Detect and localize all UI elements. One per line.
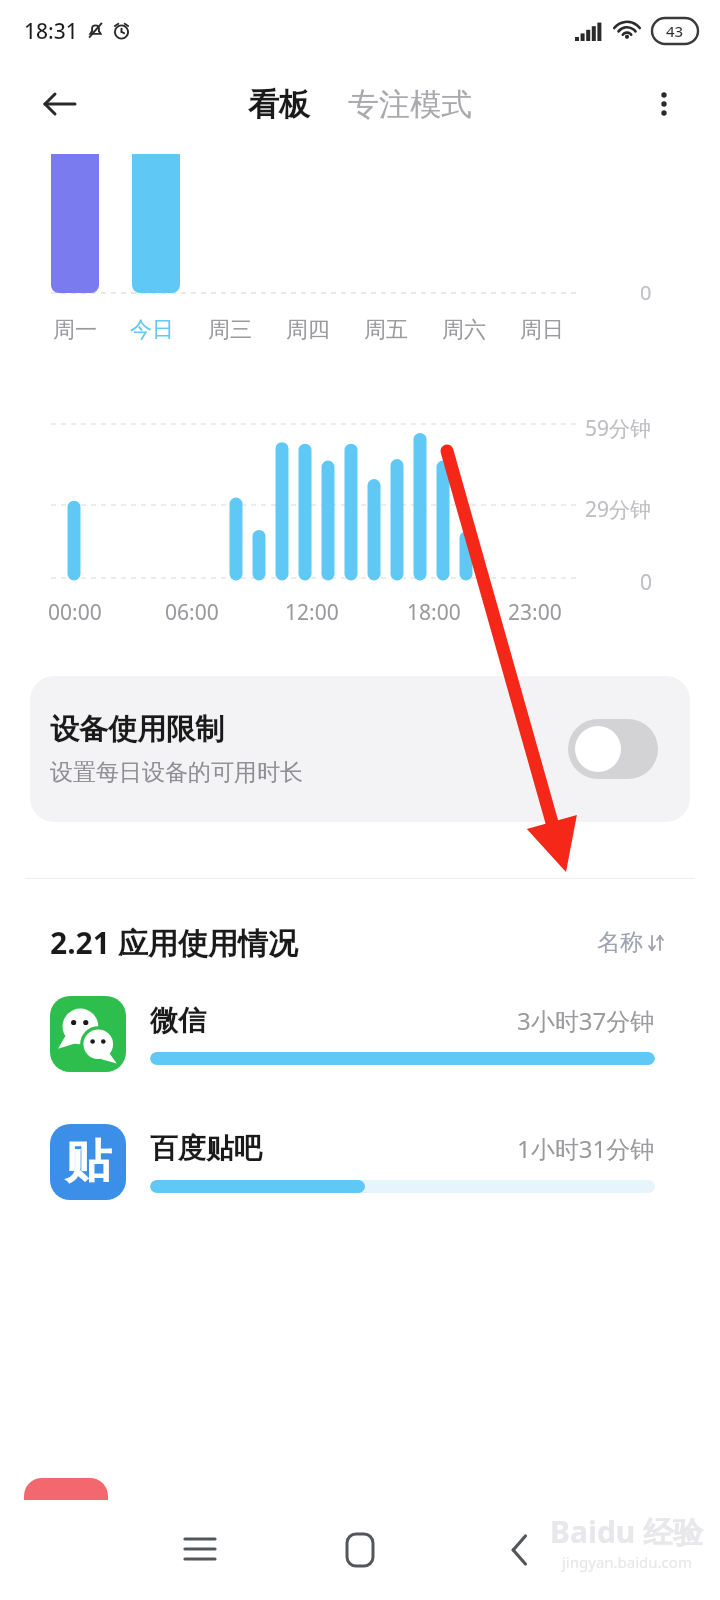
staticText: 周日 — [520, 316, 564, 344]
staticText: 设备使用限制 — [50, 711, 224, 748]
button[interactable]: 周三 — [194, 306, 266, 354]
button[interactable]: 周日 — [506, 306, 578, 354]
staticText: 周四 — [286, 316, 330, 344]
button[interactable]: 最近任务 — [165, 1515, 235, 1585]
button[interactable]: 周六 — [428, 306, 500, 354]
staticText: 周三 — [208, 316, 252, 344]
staticText: 看板 — [248, 85, 310, 124]
staticText: 贴 — [65, 1133, 111, 1191]
staticText: jingyan.baidu.com — [562, 1552, 692, 1572]
button[interactable]: 周一 — [39, 306, 111, 354]
staticText: 23:00 — [508, 598, 562, 627]
staticText: 43 — [666, 21, 684, 41]
button[interactable]: 看板 — [236, 79, 322, 130]
staticText: 06:00 — [165, 598, 219, 627]
staticText: 专注模式 — [348, 85, 472, 124]
staticText: 59分钟 — [585, 414, 652, 443]
button[interactable]: 更多选项 — [638, 78, 690, 130]
staticText: 周五 — [364, 316, 408, 344]
button[interactable]: 今日 — [116, 306, 188, 354]
staticText: 2.21 应用使用情况 — [50, 922, 298, 963]
staticText: 百度贴吧 — [150, 1131, 262, 1166]
button[interactable]: 设备使用限制开关 — [568, 719, 658, 779]
button[interactable]: 主页 — [325, 1515, 395, 1585]
staticText: 00:00 — [48, 598, 102, 627]
button[interactable]: 周四 — [272, 306, 344, 354]
staticText: Baidu 经验 — [550, 1511, 704, 1552]
staticText: 18:00 — [407, 598, 461, 627]
button[interactable]: 名称 — [593, 924, 670, 961]
button[interactable]: 返回 — [485, 1515, 555, 1585]
staticText: 29分钟 — [585, 495, 652, 524]
button[interactable]: 设备使用限制 — [30, 676, 690, 822]
staticText: 周六 — [442, 316, 486, 344]
staticText: 名称 — [597, 928, 643, 957]
staticText: 今日 — [130, 316, 174, 344]
staticText: 0 — [640, 568, 653, 597]
staticText: 设置每日设备的可用时长 — [50, 758, 303, 787]
staticText: 微信 — [150, 1003, 206, 1038]
staticText: 18:31 — [24, 17, 78, 46]
staticText: 0 — [640, 279, 652, 306]
button[interactable]: 微信 — [0, 991, 720, 1077]
staticText: 3小时37分钟 — [517, 1004, 655, 1037]
button[interactable]: 返回 — [34, 78, 86, 130]
button[interactable]: 专注模式 — [336, 79, 484, 130]
staticText: 12:00 — [285, 598, 339, 627]
staticText: 周一 — [53, 316, 97, 344]
button[interactable]: 周五 — [350, 306, 422, 354]
staticText: 1小时31分钟 — [517, 1132, 655, 1165]
button[interactable]: 贴 — [0, 1119, 720, 1205]
